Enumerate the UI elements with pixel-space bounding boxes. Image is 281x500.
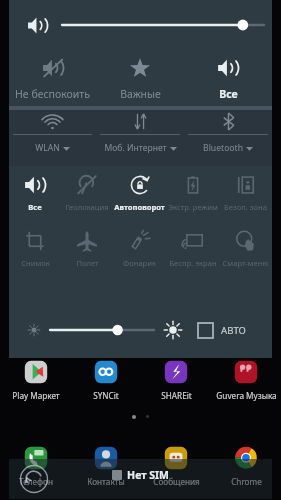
staticText: Не беспокоить [15,87,90,101]
staticText: Телефон [19,476,53,487]
button[interactable]: Все [9,172,61,218]
button[interactable]: Back [17,462,51,496]
button[interactable]: Не беспокоить [9,50,96,106]
button[interactable]: Беспр. экран [166,228,219,274]
button[interactable]: Моб. Интернет [96,110,184,166]
staticText: Chrome [231,476,262,487]
staticText: Важные [120,87,161,101]
button[interactable]: Полет [61,228,113,274]
staticText: Снимок [21,258,50,268]
button[interactable] [62,10,264,40]
staticText: Нет SIM [127,468,169,482]
staticText: Смарт-меню [222,258,269,268]
button[interactable]: Телефон [0,446,71,496]
button[interactable]: Low brightness [23,319,45,341]
staticText: Guvera Музыка [216,390,277,401]
staticText: SHAREit [161,390,192,401]
staticText: Сообщения [153,476,200,487]
staticText: Экстр. режим [168,202,218,212]
button[interactable]: Экстр. режим [166,172,219,218]
button[interactable]: Volume [20,8,54,42]
staticText: Автоповорот [114,202,165,212]
staticText: Все [219,87,238,101]
button[interactable]: Снимок [9,228,61,274]
button[interactable]: Guvera Музыка [211,360,281,404]
button[interactable]: Все [184,50,272,106]
staticText: Контакты [87,476,125,487]
staticText: Фонарик [123,258,156,268]
button[interactable]: High brightness [160,317,186,343]
button[interactable]: Геолокация [61,172,113,218]
staticText: Все [28,202,42,212]
button[interactable]: Контакты [71,446,141,496]
staticText: Моб. Интернет [104,142,167,154]
staticText: Геолокация [65,202,109,212]
button[interactable]: Безоп. зона [219,172,272,218]
staticText: Безоп. зона [224,202,267,212]
button[interactable]: Фонарик [113,228,166,274]
staticText: WLAN [35,142,60,154]
button[interactable]: WLAN [9,110,96,166]
button[interactable]: Play Маркет [0,360,71,404]
button[interactable]: Сообщения [141,446,211,496]
staticText: Беспр. экран [169,258,217,268]
staticText: Полет [76,258,99,268]
button[interactable]: Chrome [211,446,281,496]
button[interactable]: АВТО [198,323,246,338]
button[interactable]: Автоповорот [113,172,166,218]
button[interactable]: SHAREit [141,360,211,404]
staticText: SYNCit [93,390,119,401]
staticText: Bluetooth [203,142,243,154]
staticText: АВТО [221,324,246,337]
button[interactable] [50,317,154,343]
button[interactable]: Смарт-меню [219,228,272,274]
button[interactable]: SYNCit [71,360,141,404]
button[interactable]: Важные [96,50,184,106]
staticText: Play Маркет [12,390,60,401]
button[interactable]: Bluetooth [184,110,272,166]
